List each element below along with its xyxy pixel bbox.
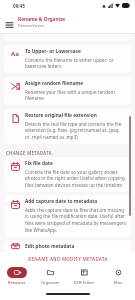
staticText: Restore original file extension [25,112,97,119]
staticText: Misc [114,280,123,285]
staticText: Corrects the file date so your gallery s… [25,169,126,189]
button[interactable]: Edit photo metadata [4,240,131,252]
button[interactable]: Misc [101,267,135,285]
staticText: CHANGE METADATA [6,150,52,156]
button[interactable]: Restore original file extension [4,109,131,144]
staticText: Detects the real file type and corrects … [25,121,126,141]
staticText: Rename & Organize [18,16,66,23]
staticText: Fix file date [25,160,53,167]
staticText: RENAME AND MODIFY METADATA [28,256,108,262]
staticText: 09:45 [13,3,25,9]
staticText: Add capture date to metadata [25,198,98,205]
button[interactable]: Assign random filename [4,77,131,105]
staticText: Edit photo metadata [25,243,75,249]
staticText: Renamer [8,280,26,285]
staticText: To Upper- or Lowercase [25,48,81,55]
button[interactable]: Organizer [33,267,67,285]
staticText: Aa [11,50,19,58]
staticText: Premium Version [18,24,44,28]
staticText: Adds the capture date to files that are … [25,207,126,234]
staticText: Renames your files with a unique random … [25,89,126,102]
button[interactable]: EXIF Editor [67,267,101,285]
button[interactable]: Aa [4,45,131,73]
staticText: Organizer [41,280,60,285]
button[interactable]: Open navigation menu [2,11,17,33]
button[interactable]: Renamer [0,267,33,285]
staticText: Converts the filename to either upper- o… [25,57,126,70]
button[interactable]: Add capture date to metadata [4,195,131,237]
staticText: EXIF Editor [74,280,95,285]
staticText: Assign random filename [25,80,84,87]
button[interactable]: Fix file date [4,157,131,192]
button[interactable]: RENAME AND MODIFY METADATA [0,252,135,265]
